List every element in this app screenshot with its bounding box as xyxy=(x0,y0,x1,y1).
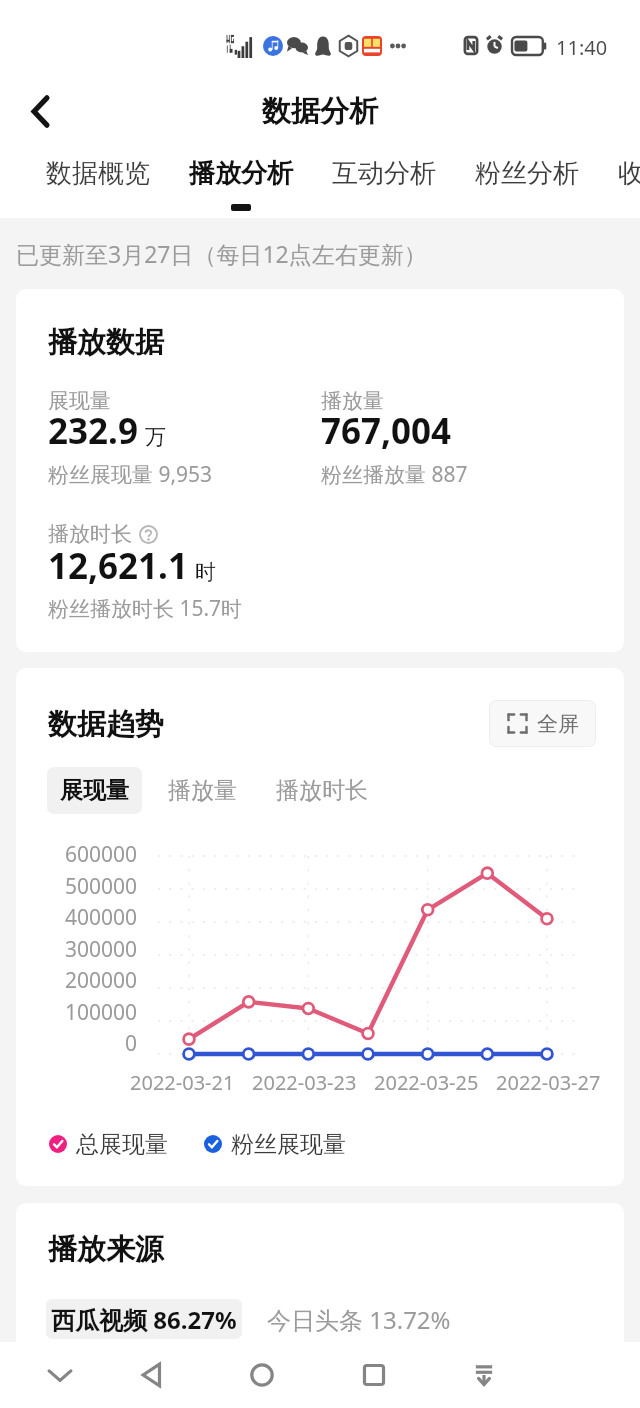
button[interactable]: Recent apps xyxy=(341,1342,407,1408)
button[interactable]: 粉丝分析 xyxy=(475,147,579,204)
button[interactable]: 互动分析 xyxy=(332,147,436,204)
staticText: 500000 xyxy=(65,872,138,901)
staticText: 300000 xyxy=(65,935,138,964)
staticText: 今日头条 13.72% xyxy=(267,1303,451,1336)
staticText: 展现量 xyxy=(48,388,111,414)
staticText: 767,004 xyxy=(321,407,452,455)
staticText: 2022-03-21 xyxy=(130,1069,235,1096)
staticText: 播放时长 xyxy=(276,776,368,805)
button[interactable]: Collapse keyboard xyxy=(27,1342,93,1408)
staticText: 12,621.1 xyxy=(48,542,188,590)
staticText: 粉丝播放时长 15.7时 xyxy=(48,594,243,623)
staticText: 已更新至3月27日（每日12点左右更新） xyxy=(16,238,427,269)
staticText: 粉丝展现量 xyxy=(231,1130,346,1159)
button[interactable]: Back xyxy=(119,1342,185,1408)
staticText: 粉丝分析 xyxy=(475,157,579,190)
staticText: 200000 xyxy=(65,966,138,995)
staticText: 总展现量 xyxy=(76,1130,168,1159)
staticText: 0 xyxy=(125,1029,138,1058)
button[interactable]: 播放时长 xyxy=(263,767,381,814)
button[interactable]: 今日头条 13.72% xyxy=(267,1299,451,1339)
button[interactable]: Back xyxy=(12,83,68,139)
staticText: 收 xyxy=(618,157,640,190)
staticText: 西瓜视频 86.27% xyxy=(51,1303,237,1336)
staticText: 2022-03-27 xyxy=(496,1069,601,1096)
staticText: 400000 xyxy=(65,903,138,932)
button[interactable]: 播放分析 xyxy=(189,147,293,211)
button[interactable]: Home xyxy=(229,1342,295,1408)
staticText: 100000 xyxy=(65,998,138,1027)
staticText: 互动分析 xyxy=(332,157,436,190)
staticText: 数据概览 xyxy=(46,157,150,190)
staticText: 时 xyxy=(195,559,216,585)
staticText: 播放时长 xyxy=(48,521,132,547)
staticText: 数据分析 xyxy=(262,93,378,130)
staticText: 全屏 xyxy=(537,711,579,737)
button[interactable]: 全屏 xyxy=(489,700,596,747)
button[interactable]: Hide navigation xyxy=(451,1342,517,1408)
staticText: 粉丝展现量 9,953 xyxy=(48,460,213,489)
staticText: 播放量 xyxy=(168,776,237,805)
staticText: 播放数据 xyxy=(48,324,164,361)
staticText: 播放分析 xyxy=(189,157,293,190)
staticText: 11:40 xyxy=(556,34,608,61)
staticText: 2022-03-23 xyxy=(252,1069,357,1096)
button[interactable]: 展现量 xyxy=(47,767,142,814)
button[interactable]: 收 xyxy=(618,147,640,204)
button[interactable]: 西瓜视频 86.27% xyxy=(46,1299,242,1339)
staticText: 232.9 xyxy=(48,407,138,455)
staticText: 展现量 xyxy=(60,776,129,805)
button[interactable]: 播放量 xyxy=(155,767,250,814)
staticText: 2022-03-25 xyxy=(374,1069,479,1096)
staticText: 播放来源 xyxy=(48,1231,164,1268)
staticText: 数据趋势 xyxy=(48,706,164,743)
staticText: 万 xyxy=(145,424,166,450)
staticText: 600000 xyxy=(65,840,138,869)
button[interactable]: 数据概览 xyxy=(46,147,150,204)
staticText: 粉丝播放量 887 xyxy=(321,460,468,489)
staticText: 播放量 xyxy=(321,388,384,414)
